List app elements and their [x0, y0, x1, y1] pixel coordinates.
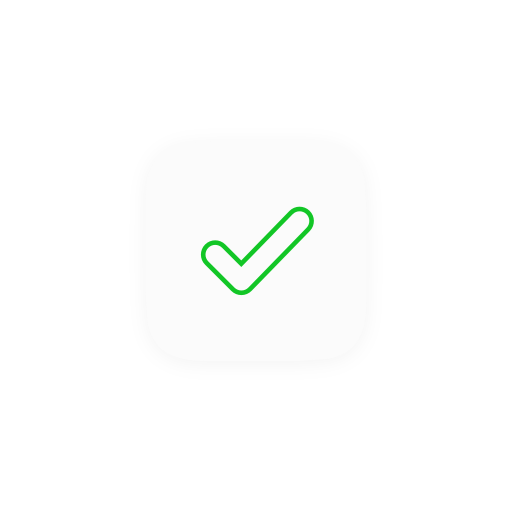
button[interactable]: Task complete [145, 141, 366, 361]
